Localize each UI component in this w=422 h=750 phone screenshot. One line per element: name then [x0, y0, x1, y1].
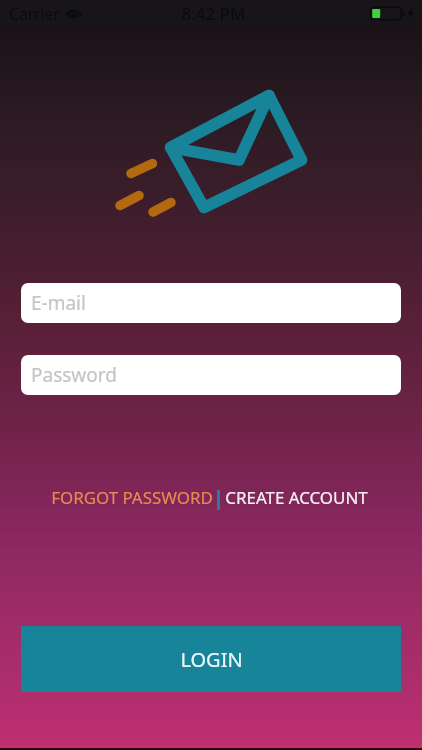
staticText: Password — [31, 362, 117, 388]
staticText: 8:42 PM — [181, 2, 246, 25]
button[interactable]: FORGOT PASSWORD — [51, 486, 213, 506]
staticText: LOGIN — [180, 646, 243, 673]
staticText: CREATE ACCOUNT — [225, 486, 368, 506]
staticText: Carrier — [9, 3, 60, 24]
staticText: FORGOT PASSWORD — [51, 486, 213, 506]
button[interactable]: Password — [21, 355, 401, 395]
other: Mail logo — [0, 24, 422, 252]
button[interactable]: LOGIN — [21, 626, 401, 692]
staticText: E-mail — [31, 290, 86, 316]
button[interactable]: CREATE ACCOUNT — [225, 486, 368, 506]
button[interactable]: E-mail — [21, 283, 401, 323]
